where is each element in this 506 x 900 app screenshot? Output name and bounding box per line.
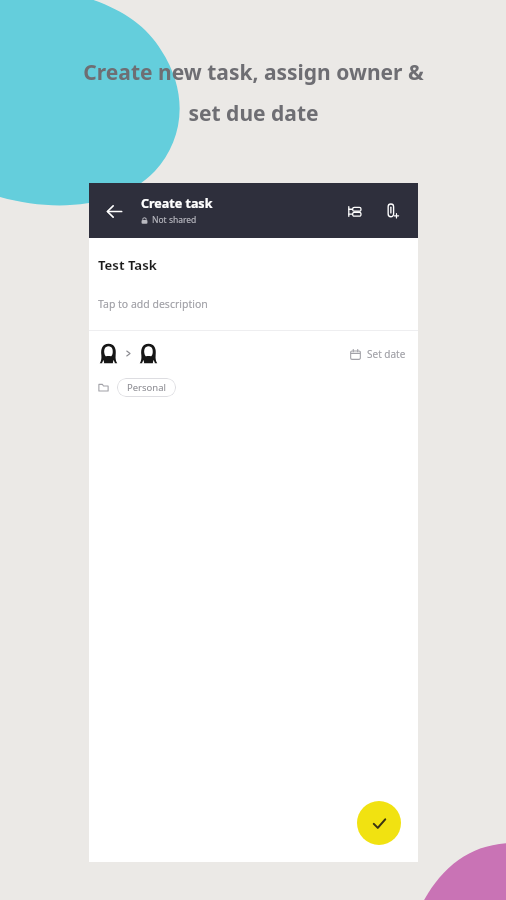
button[interactable]: Personal — [117, 378, 176, 397]
button[interactable]: Back — [97, 194, 131, 228]
staticText: Create new task, assign owner & — [83, 58, 424, 87]
staticText: Set date — [367, 347, 406, 361]
staticText: Personal — [127, 381, 166, 394]
button[interactable]: Subtasks — [338, 195, 370, 227]
staticText: set due date — [188, 99, 319, 128]
button[interactable]: Set date — [347, 343, 409, 365]
staticText: Tap to add description — [98, 297, 208, 311]
staticText: Create task — [141, 195, 213, 212]
button[interactable]: Assign owner — [98, 341, 159, 366]
staticText: Not shared — [152, 214, 197, 226]
staticText: Test Task — [98, 256, 157, 274]
button[interactable]: Save task — [357, 801, 401, 845]
button[interactable]: Add attachment — [376, 195, 408, 227]
